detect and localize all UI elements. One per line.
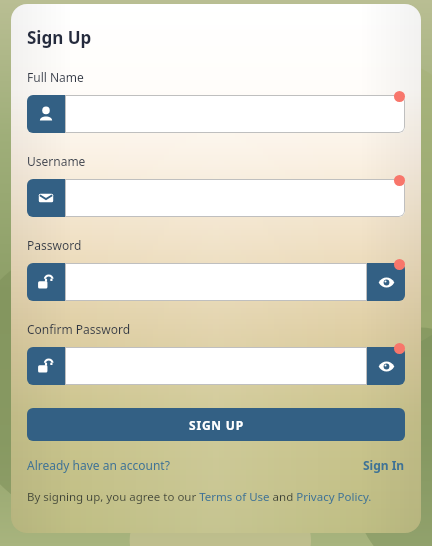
button[interactable]: Show password: [27, 263, 405, 301]
button[interactable]: Show password: [367, 347, 405, 385]
button[interactable]: Sign In: [363, 457, 405, 473]
staticText: Username: [27, 153, 86, 169]
button[interactable]: [27, 95, 405, 133]
staticText: Confirm Password: [27, 321, 131, 337]
staticText: Password: [27, 237, 82, 253]
staticText: SIGN UP: [189, 417, 244, 433]
button[interactable]: Show password: [367, 263, 405, 301]
button[interactable]: Show password: [27, 347, 405, 385]
button[interactable]: Already have an account?: [27, 457, 170, 473]
staticText: Sign Up: [27, 26, 92, 49]
staticText: Full Name: [27, 69, 84, 85]
staticText: By signing up, you agree to our Terms of…: [27, 489, 372, 505]
button[interactable]: SIGN UP: [27, 408, 405, 441]
staticText: Already have an account?: [27, 457, 170, 473]
button[interactable]: [27, 179, 405, 217]
staticText: Sign In: [363, 457, 405, 473]
